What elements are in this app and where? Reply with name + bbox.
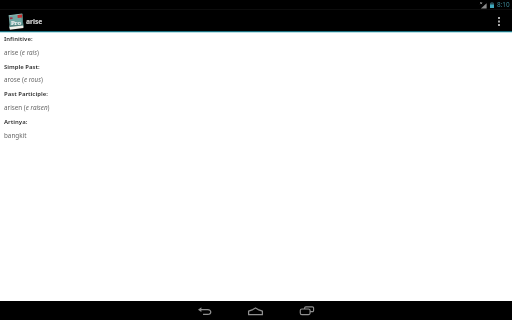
staticText: bangkit (4, 131, 27, 140)
staticText: arisen (e raisen) (4, 103, 50, 112)
button[interactable]: Recent apps (281, 301, 332, 320)
staticText: Artinya: (4, 118, 28, 126)
button[interactable]: More options (488, 11, 512, 31)
staticText: arise (26, 17, 43, 26)
staticText: 8:10 (497, 0, 510, 9)
staticText: Simple Past: (4, 63, 40, 71)
button[interactable]: Home (230, 301, 281, 320)
button[interactable]: Pro (0, 10, 48, 31)
staticText: arise (e rais) (4, 48, 39, 57)
staticText: Past Participle: (4, 90, 48, 98)
staticText: Infinitive: (4, 35, 33, 43)
button[interactable]: Back (179, 301, 230, 320)
staticText: arose (e rous) (4, 75, 43, 84)
staticText: Pro (11, 19, 21, 27)
